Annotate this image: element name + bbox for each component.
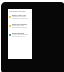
staticText: report-final-v3.pdf [12, 25, 24, 27]
staticText: Updated 2 minutes ago [12, 18, 28, 20]
staticText: Last run at 9:41 AM [12, 36, 25, 38]
staticText: Download complete [12, 23, 28, 25]
staticText: 34 items synced to Drive [12, 34, 28, 36]
staticText: Battery saver is on [12, 14, 27, 16]
staticText: Tap to turn it off now [12, 16, 26, 18]
button[interactable]: Download complete [8, 21, 32, 30]
button[interactable]: Battery saver is on [8, 12, 32, 21]
staticText: Open with Documents [12, 27, 27, 29]
button[interactable]: Backup finished [8, 30, 32, 39]
staticText: Backup finished [12, 32, 25, 34]
staticText: Notifications overview [9, 10, 26, 12]
